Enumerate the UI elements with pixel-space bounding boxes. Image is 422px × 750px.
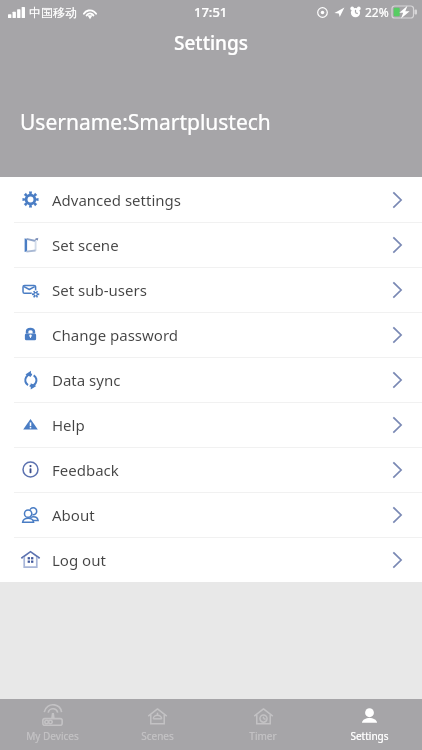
- button[interactable]: Scenes: [105, 699, 210, 750]
- button[interactable]: About: [0, 492, 422, 537]
- staticText: Timer: [249, 729, 277, 743]
- staticText: Scenes: [141, 729, 174, 743]
- staticText: Feedback: [52, 460, 119, 480]
- staticText: Set sub-users: [52, 280, 147, 300]
- staticText: Data sync: [52, 370, 121, 390]
- staticText: Help: [52, 415, 85, 435]
- button[interactable]: Set sub-users: [0, 267, 422, 312]
- staticText: 17:51: [194, 3, 228, 21]
- button[interactable]: Data sync: [0, 357, 422, 402]
- button[interactable]: My Devices: [0, 699, 105, 750]
- staticText: Log out: [52, 550, 106, 570]
- button[interactable]: Advanced settings: [0, 177, 422, 222]
- staticText: About: [52, 505, 95, 525]
- button[interactable]: Help: [0, 402, 422, 447]
- button[interactable]: Timer: [210, 699, 316, 750]
- button[interactable]: Log out: [0, 537, 422, 582]
- staticText: 中国移动: [29, 5, 77, 20]
- staticText: Advanced settings: [52, 190, 181, 210]
- staticText: Settings: [174, 30, 248, 56]
- staticText: Username:Smartplustech: [20, 108, 271, 137]
- staticText: Change password: [52, 325, 179, 345]
- staticText: 22%: [365, 4, 389, 20]
- button[interactable]: Feedback: [0, 447, 422, 492]
- button[interactable]: Settings: [316, 699, 422, 750]
- button[interactable]: Change password: [0, 312, 422, 357]
- staticText: Settings: [350, 729, 389, 743]
- staticText: Set scene: [52, 235, 119, 255]
- button[interactable]: Set scene: [0, 222, 422, 267]
- staticText: My Devices: [26, 729, 79, 743]
